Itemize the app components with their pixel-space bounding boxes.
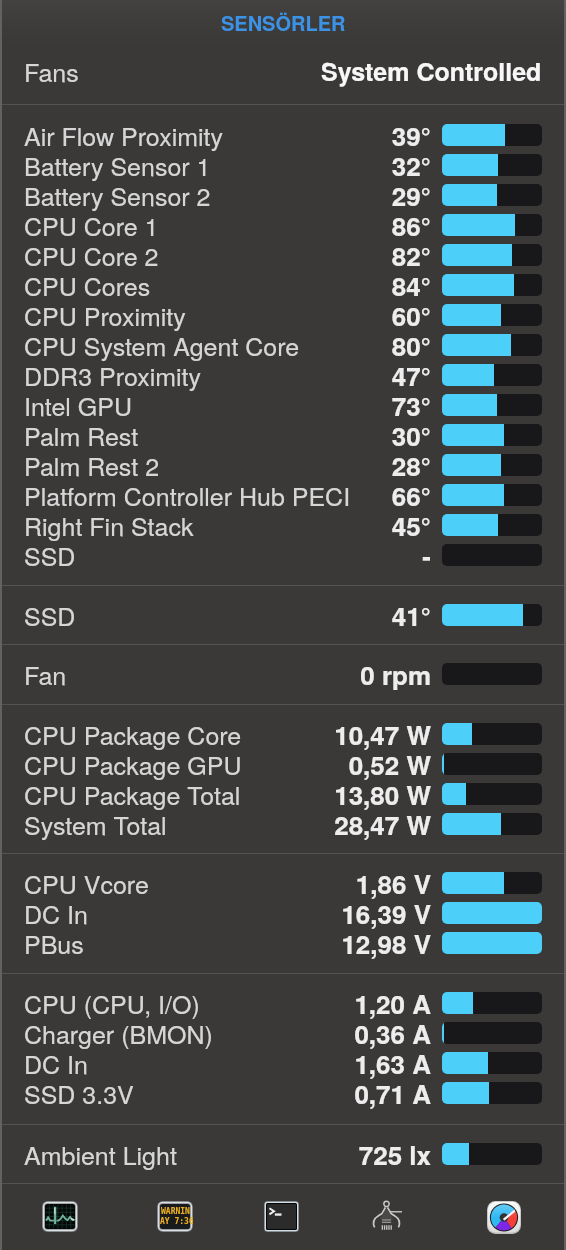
staticText: 0 rpm xyxy=(360,656,431,693)
staticText: Charger (BMON) xyxy=(24,1015,213,1051)
button[interactable]: CPU Core 2 xyxy=(0,240,566,270)
staticText: 47° xyxy=(391,357,431,394)
staticText: 80° xyxy=(391,327,431,364)
staticText: 45° xyxy=(391,507,431,544)
staticText: AY 7:36 xyxy=(160,1217,193,1226)
staticText: 73° xyxy=(391,387,431,424)
staticText: CPU Cores xyxy=(24,267,151,303)
button[interactable]: CPU (CPU, I/O) xyxy=(0,988,566,1018)
staticText: DC In xyxy=(24,895,88,931)
staticText: 16,39 V xyxy=(341,895,431,932)
button[interactable]: Platform Controller Hub PECI xyxy=(0,480,566,510)
staticText: Fans xyxy=(24,53,79,89)
staticText: 39° xyxy=(391,117,431,154)
button[interactable]: CPU Package Total xyxy=(0,779,566,809)
staticText: Right Fin Stack xyxy=(24,507,194,543)
staticText: CPU Proximity xyxy=(24,297,186,333)
staticText: Battery Sensor 1 xyxy=(24,147,211,183)
staticText: Palm Rest 2 xyxy=(24,447,160,483)
button[interactable]: SSD xyxy=(0,600,566,630)
button[interactable]: CPU Proximity xyxy=(0,300,566,330)
staticText: Air Flow Proximity xyxy=(24,117,224,153)
staticText: Intel GPU xyxy=(24,387,133,423)
staticText: System Total xyxy=(24,806,167,842)
staticText: 41° xyxy=(391,597,431,634)
staticText: CPU Core 1 xyxy=(24,207,159,243)
staticText: CPU Package Core xyxy=(24,716,242,752)
staticText: Battery Sensor 2 xyxy=(24,177,211,213)
staticText: 66° xyxy=(391,477,431,514)
button[interactable]: PBus xyxy=(0,928,566,958)
staticText: CPU (CPU, I/O) xyxy=(24,985,200,1021)
staticText: PBus xyxy=(24,925,84,961)
staticText: WARNIN xyxy=(161,1207,190,1216)
staticText: 13,80 W xyxy=(334,776,431,813)
staticText: 86° xyxy=(391,207,431,244)
button[interactable]: Palm Rest 2 xyxy=(0,450,566,480)
button[interactable]: Gauge xyxy=(479,1193,529,1242)
staticText: SENSÖRLER xyxy=(221,8,346,37)
staticText: 1,86 V xyxy=(355,865,431,902)
staticText: Fan xyxy=(24,656,67,692)
button[interactable]: CPU Package Core xyxy=(0,719,566,749)
staticText: SSD xyxy=(24,597,76,633)
staticText: 29° xyxy=(391,177,431,214)
button[interactable]: Palm Rest xyxy=(0,420,566,450)
button[interactable]: Battery Sensor 2 xyxy=(0,180,566,210)
button[interactable]: DC In xyxy=(0,898,566,928)
button[interactable]: Intel GPU xyxy=(0,390,566,420)
staticText: 12,98 V xyxy=(341,925,431,962)
staticText: 0,36 A xyxy=(354,1015,431,1052)
staticText: 1,20 A xyxy=(354,985,431,1022)
button[interactable]: System Log xyxy=(149,1193,201,1240)
button[interactable]: Fan xyxy=(0,659,566,689)
staticText: Palm Rest xyxy=(24,417,139,453)
button[interactable]: Hardware Sensors xyxy=(360,1191,413,1243)
staticText: DDR3 Proximity xyxy=(24,357,202,393)
staticText: SSD 3.3V xyxy=(24,1075,134,1111)
staticText: 1,63 A xyxy=(354,1045,431,1082)
button[interactable]: Activity Monitor xyxy=(34,1193,86,1240)
staticText: Platform Controller Hub PECI xyxy=(24,477,351,513)
button[interactable]: DDR3 Proximity xyxy=(0,360,566,390)
button[interactable]: Right Fin Stack xyxy=(0,510,566,540)
staticText: System Controlled xyxy=(321,53,542,89)
button[interactable]: Charger (BMON) xyxy=(0,1018,566,1048)
staticText: 82° xyxy=(391,237,431,274)
button[interactable]: Air Flow Proximity xyxy=(0,120,566,150)
staticText: Ambient Light xyxy=(24,1136,177,1172)
button[interactable]: Battery Sensor 1 xyxy=(0,150,566,180)
button[interactable]: System Total xyxy=(0,809,566,839)
staticText: 725 lx xyxy=(358,1136,431,1173)
staticText: CPU Core 2 xyxy=(24,237,159,273)
button[interactable]: Fans xyxy=(0,45,566,104)
staticText: CPU Vcore xyxy=(24,865,149,901)
button[interactable]: Ambient Light xyxy=(0,1139,566,1169)
staticText: 28° xyxy=(391,447,431,484)
staticText: 32° xyxy=(391,147,431,184)
staticText: 0,52 W xyxy=(348,746,431,783)
button[interactable]: CPU Core 1 xyxy=(0,210,566,240)
staticText: 0,71 A xyxy=(354,1075,431,1112)
staticText: - xyxy=(422,537,431,574)
staticText: 10,47 W xyxy=(334,716,431,753)
button[interactable]: SSD xyxy=(0,540,566,570)
button[interactable]: Terminal xyxy=(256,1193,307,1240)
button[interactable]: CPU Cores xyxy=(0,270,566,300)
staticText: 30° xyxy=(391,417,431,454)
staticText: DC In xyxy=(24,1045,88,1081)
staticText: 60° xyxy=(391,297,431,334)
staticText: 28,47 W xyxy=(334,806,431,843)
button[interactable]: CPU System Agent Core xyxy=(0,330,566,360)
staticText: SSD xyxy=(24,537,76,573)
staticText: CPU Package Total xyxy=(24,776,241,812)
button[interactable]: DC In xyxy=(0,1048,566,1078)
button[interactable]: CPU Package GPU xyxy=(0,749,566,779)
staticText: 84° xyxy=(391,267,431,304)
button[interactable]: SSD 3.3V xyxy=(0,1078,566,1108)
staticText: CPU System Agent Core xyxy=(24,327,300,363)
button[interactable]: CPU Vcore xyxy=(0,868,566,898)
staticText: CPU Package GPU xyxy=(24,746,242,782)
